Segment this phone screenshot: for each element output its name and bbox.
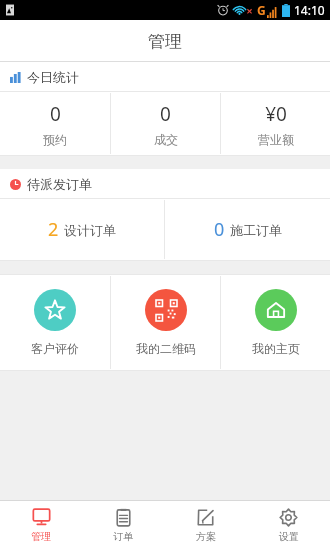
button[interactable]: 0: [111, 92, 220, 155]
staticText: 设置: [279, 530, 299, 543]
staticText: 0: [50, 101, 61, 127]
staticText: 管理: [148, 31, 182, 52]
staticText: 我的主页: [252, 341, 300, 356]
staticText: 成交: [154, 132, 178, 147]
other: 管理: [32, 508, 51, 527]
button[interactable]: 2: [0, 199, 164, 260]
other: 方案: [196, 508, 215, 527]
staticText: G: [257, 2, 266, 18]
other: 设置: [279, 508, 298, 527]
staticText: 管理: [31, 530, 51, 543]
button[interactable]: 订单: [82, 501, 164, 550]
button[interactable]: 0: [165, 199, 330, 260]
button[interactable]: ¥0: [221, 92, 330, 155]
staticText: 订单: [113, 530, 133, 543]
staticText: 待派发订单: [27, 176, 92, 192]
button[interactable]: 0: [0, 92, 110, 155]
staticText: 方案: [196, 530, 216, 543]
staticText: 施工订单: [230, 222, 282, 238]
staticText: ¥0: [265, 101, 287, 127]
staticText: 设计订单: [64, 222, 116, 238]
button[interactable]: 管理: [0, 501, 82, 550]
other: 订单: [114, 508, 133, 527]
button[interactable]: 方案: [164, 501, 247, 550]
staticText: 0: [160, 101, 171, 127]
button[interactable]: 我的二维码: [111, 275, 220, 370]
button[interactable]: 客户评价: [0, 275, 110, 370]
staticText: 2: [48, 217, 59, 242]
staticText: 14:10: [294, 2, 325, 18]
staticText: 0: [214, 217, 225, 242]
button[interactable]: 设置: [247, 501, 330, 550]
staticText: 营业额: [258, 132, 294, 147]
button[interactable]: 我的主页: [221, 275, 330, 370]
staticText: 我的二维码: [136, 341, 196, 356]
staticText: 今日统计: [27, 69, 79, 85]
staticText: 客户评价: [31, 341, 79, 356]
staticText: 预约: [43, 132, 67, 147]
